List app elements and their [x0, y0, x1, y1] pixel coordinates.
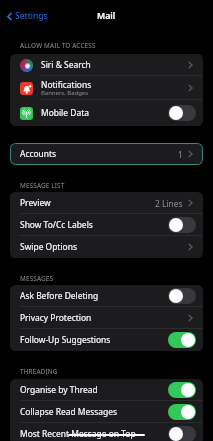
staticText: Notifications — [41, 79, 92, 91]
button[interactable]: Collapse Read Messages — [10, 401, 203, 423]
button[interactable]: Swipe Options — [10, 236, 203, 258]
staticText: Siri & Search — [41, 59, 91, 71]
button[interactable]: Mobile Data — [10, 100, 203, 126]
button[interactable]: Follow-Up Suggestions — [10, 329, 203, 351]
staticText: Banners, Badges — [41, 89, 88, 97]
button[interactable]: Off — [168, 426, 196, 441]
button[interactable]: Ask Before Deleting — [10, 285, 203, 307]
button[interactable]: Off — [168, 217, 196, 233]
button[interactable]: On — [168, 332, 196, 348]
staticText: MESSAGE LIST — [20, 181, 65, 190]
staticText: 2 Lines — [155, 198, 183, 209]
staticText: Collapse Read Messages — [20, 406, 118, 418]
staticText: Mail — [97, 10, 116, 22]
staticText: Swipe Options — [20, 241, 77, 253]
staticText: ALLOW MAIL TO ACCESS — [20, 41, 96, 50]
button[interactable]: Siri & Search — [10, 54, 203, 76]
button[interactable]: On — [168, 404, 196, 420]
button[interactable]: Preview — [10, 192, 203, 214]
staticText: Most Recent Message on Top — [20, 428, 136, 440]
staticText: THREADING — [20, 367, 58, 376]
staticText: 1 — [178, 149, 183, 160]
button[interactable]: Settings — [4, 8, 50, 24]
button[interactable]: Off — [168, 288, 196, 304]
staticText: Show To/Cc Labels — [20, 219, 93, 231]
button[interactable]: Accounts — [10, 143, 203, 165]
staticText: Follow-Up Suggestions — [20, 334, 111, 346]
staticText: Settings — [15, 10, 48, 22]
staticText: Mobile Data — [41, 107, 89, 119]
button[interactable]: Most Recent Message on Top — [10, 423, 203, 441]
staticText: Privacy Protection — [20, 312, 92, 324]
button[interactable]: Off — [168, 105, 196, 121]
staticText: Accounts — [20, 148, 57, 160]
staticText: MESSAGES — [20, 274, 54, 283]
staticText: Preview — [20, 197, 51, 209]
button[interactable]: Show To/Cc Labels — [10, 214, 203, 236]
button[interactable]: On — [168, 382, 196, 398]
staticText: Organise by Thread — [20, 384, 98, 396]
staticText: Ask Before Deleting — [20, 290, 99, 302]
button[interactable]: Privacy Protection — [10, 307, 203, 329]
button[interactable]: Organise by Thread — [10, 379, 203, 401]
button[interactable]: Notifications — [10, 76, 203, 100]
